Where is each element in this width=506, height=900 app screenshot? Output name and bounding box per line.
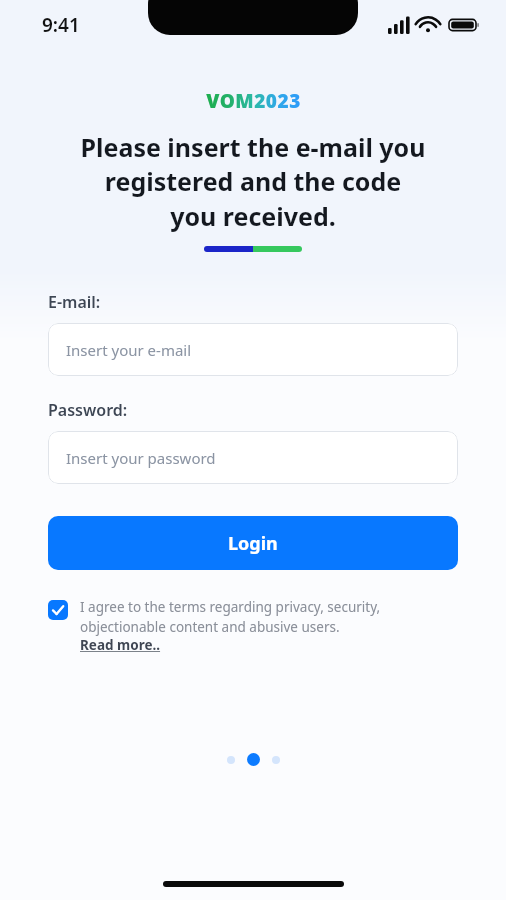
button[interactable]: Insert your password xyxy=(48,431,458,484)
other: I agree to the terms xyxy=(48,600,68,620)
staticText: VOM2023 xyxy=(206,88,301,114)
staticText: Insert your e-mail xyxy=(66,340,192,360)
button[interactable]: Insert your e-mail xyxy=(48,323,458,376)
button[interactable]: Login xyxy=(48,516,458,570)
button[interactable]: Read more.. xyxy=(80,636,161,654)
staticText: Please insert the e-mail you registered … xyxy=(16,130,490,234)
staticText: I agree to the terms regarding privacy, … xyxy=(80,598,381,636)
staticText: E-mail: xyxy=(48,291,101,313)
staticText: Login xyxy=(228,531,278,556)
staticText: Insert your password xyxy=(66,448,216,468)
button[interactable]: I agree to the terms xyxy=(48,598,458,654)
staticText: Password: xyxy=(48,399,128,421)
staticText: 9:41 xyxy=(42,12,80,38)
